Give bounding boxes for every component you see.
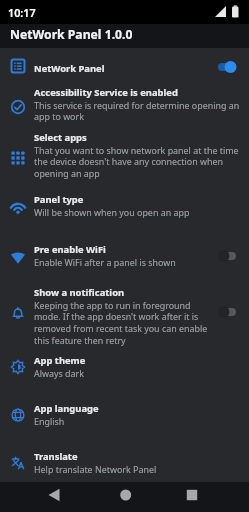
staticText: That you want to show network panel at t… bbox=[34, 144, 239, 180]
staticText: Will be shown when you open an app bbox=[34, 206, 190, 218]
staticText: Select apps bbox=[34, 131, 87, 144]
button[interactable]: App theme bbox=[0, 350, 249, 384]
button[interactable] bbox=[182, 485, 202, 505]
button[interactable] bbox=[115, 485, 135, 505]
staticText: Keeping the app to run in foreground mod… bbox=[34, 299, 208, 347]
button[interactable]: Translate bbox=[0, 446, 249, 480]
staticText: App theme bbox=[34, 354, 86, 367]
staticText: NetWork Panel 1.0.0 bbox=[10, 26, 133, 43]
button[interactable]: Show a notification bbox=[0, 282, 249, 352]
staticText: 10:17 bbox=[8, 5, 36, 20]
staticText: Panel type bbox=[34, 193, 84, 206]
staticText: Enable WiFi after a panel is shown bbox=[34, 256, 176, 268]
button[interactable]: Panel type bbox=[0, 189, 249, 223]
staticText: Translate bbox=[34, 450, 78, 463]
staticText: Help translate Network Panel bbox=[34, 463, 157, 475]
staticText: App language bbox=[34, 402, 99, 415]
button[interactable] bbox=[44, 485, 64, 505]
button[interactable]: App language bbox=[0, 398, 249, 432]
staticText: Always dark bbox=[34, 367, 84, 379]
staticText: Pre enable WiFi bbox=[34, 243, 106, 256]
button[interactable]: Pre enable WiFi bbox=[0, 239, 249, 273]
button[interactable]: NetWork Panel bbox=[0, 48, 249, 88]
staticText: NetWork Panel bbox=[34, 62, 105, 75]
staticText: Accessibility Service is enabled bbox=[34, 86, 178, 99]
button[interactable]: Select apps bbox=[0, 127, 249, 185]
staticText: Show a notification bbox=[34, 286, 125, 299]
staticText: This service is required for determine o… bbox=[34, 99, 240, 123]
button[interactable]: Accessibility Service is enabled bbox=[0, 82, 249, 130]
staticText: English bbox=[34, 415, 65, 427]
